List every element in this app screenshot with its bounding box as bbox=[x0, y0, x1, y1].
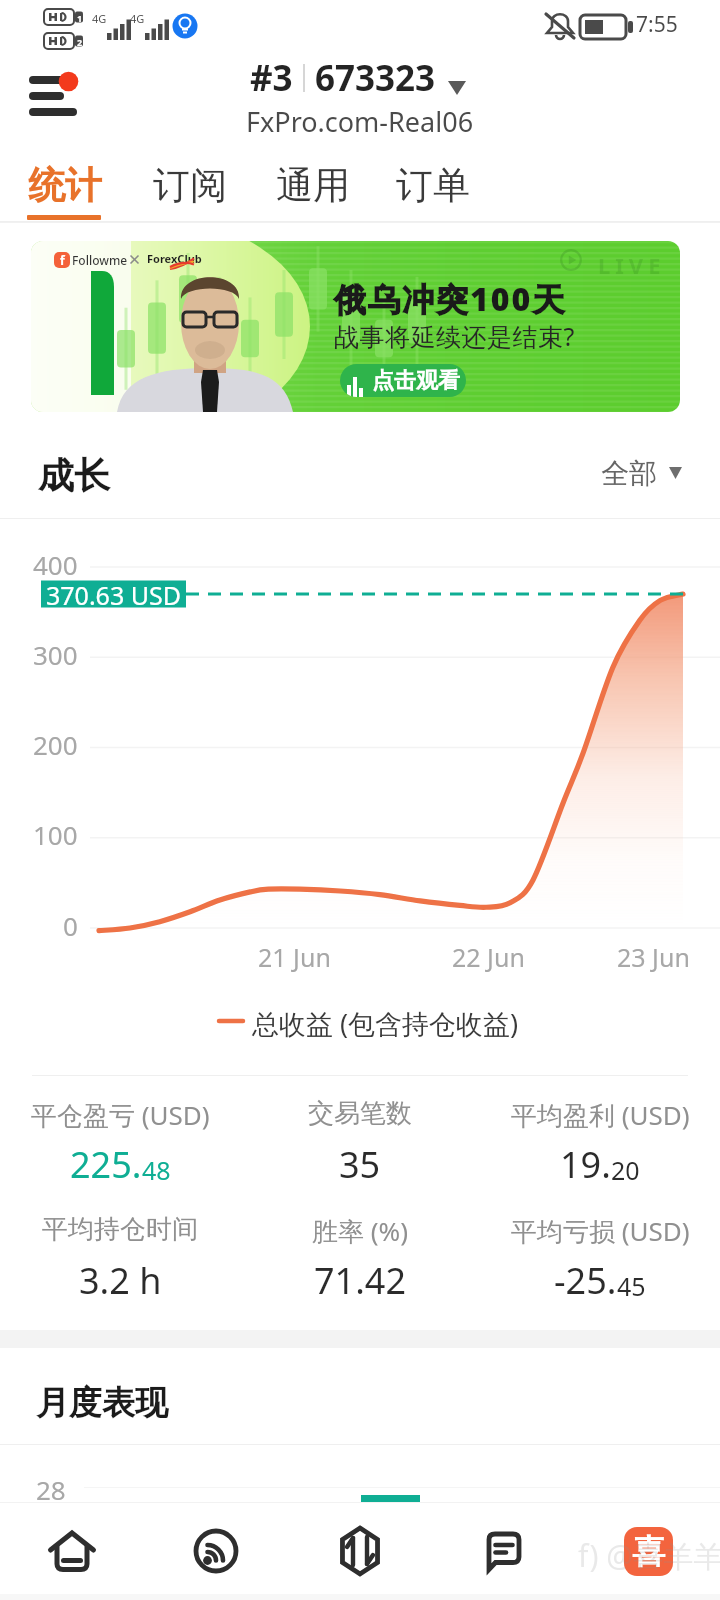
staticText: 673323 bbox=[315, 54, 436, 102]
staticText: 45 bbox=[617, 1269, 646, 1303]
staticText: 月度表现 bbox=[36, 1382, 168, 1424]
button[interactable]: Profile bbox=[576, 1502, 720, 1600]
staticText: -25. bbox=[554, 1256, 617, 1305]
staticText: 全部 bbox=[601, 456, 657, 491]
button[interactable]: Feed bbox=[144, 1502, 288, 1600]
button[interactable]: 全部 bbox=[601, 456, 682, 491]
staticText: 3.2 h bbox=[79, 1256, 162, 1305]
staticText: 平仓盈亏 (USD) bbox=[31, 1097, 210, 1133]
staticText: 点击观看 bbox=[372, 367, 460, 395]
staticText: 2 bbox=[77, 36, 83, 48]
staticText: 48 bbox=[142, 1153, 171, 1187]
staticText: 200 bbox=[33, 727, 78, 761]
staticText: 平均盈利 (USD) bbox=[511, 1097, 690, 1133]
staticText: 0 bbox=[63, 908, 78, 942]
button[interactable]: 订单 bbox=[372, 148, 494, 222]
staticText: 订单 bbox=[396, 162, 470, 209]
button[interactable]: 统计 bbox=[4, 148, 126, 222]
staticText: 成长 bbox=[38, 453, 110, 498]
staticText: 100 bbox=[33, 817, 78, 851]
staticText: 统计 bbox=[28, 162, 102, 209]
staticText: 交易笔数 bbox=[308, 1097, 412, 1130]
staticText: 370.63 USD bbox=[46, 578, 181, 610]
staticText: 俄乌冲突100天 bbox=[334, 277, 567, 321]
staticText: 35 bbox=[339, 1140, 381, 1189]
staticText: 300 bbox=[33, 637, 78, 671]
staticText: 胜率 (%) bbox=[312, 1213, 408, 1249]
button[interactable]: Trade bbox=[288, 1502, 432, 1600]
staticText: 平均亏损 (USD) bbox=[511, 1213, 690, 1249]
staticText: 400 bbox=[33, 547, 78, 581]
staticText: #3 bbox=[250, 54, 293, 102]
staticText: 喜 bbox=[632, 1531, 665, 1573]
staticText: 71.42 bbox=[314, 1256, 407, 1305]
staticText: f) @喜羊羊1 bbox=[578, 1535, 720, 1576]
staticText: 4G bbox=[92, 11, 107, 26]
staticText: 7:55 bbox=[636, 10, 678, 39]
staticText: 战事将延续还是结束? bbox=[334, 319, 575, 353]
button[interactable]: Messages bbox=[432, 1502, 576, 1600]
staticText: 225. bbox=[70, 1140, 142, 1189]
button[interactable]: 通用 bbox=[252, 148, 374, 222]
staticText: 订阅 bbox=[153, 162, 227, 209]
button[interactable]: 点击观看 bbox=[340, 364, 466, 397]
button[interactable]: Home bbox=[0, 1502, 144, 1600]
staticText: 19. bbox=[560, 1140, 611, 1189]
staticText: LIVE bbox=[598, 250, 666, 280]
button[interactable]: 俄乌冲突100天 bbox=[31, 241, 680, 412]
staticText: 28 bbox=[36, 1472, 66, 1507]
staticText: 1 bbox=[77, 12, 83, 24]
staticText: 20 bbox=[611, 1153, 640, 1187]
button[interactable]: Menu bbox=[16, 62, 92, 136]
button[interactable]: 订阅 bbox=[129, 148, 251, 222]
staticText: 23 Jun bbox=[617, 940, 690, 974]
staticText: 22 Jun bbox=[452, 940, 525, 974]
staticText: 21 Jun bbox=[258, 940, 331, 974]
staticText: 通用 bbox=[276, 162, 350, 209]
staticText: Followme bbox=[72, 252, 128, 268]
staticText: 总收益 (包含持仓收益) bbox=[252, 1005, 519, 1042]
staticText: 平均持仓时间 bbox=[42, 1213, 198, 1246]
staticText: f bbox=[60, 252, 65, 268]
staticText: ForexClub bbox=[147, 251, 202, 266]
staticText: 4G bbox=[130, 11, 145, 26]
staticText: FxPro.com-Real06 bbox=[246, 103, 474, 140]
